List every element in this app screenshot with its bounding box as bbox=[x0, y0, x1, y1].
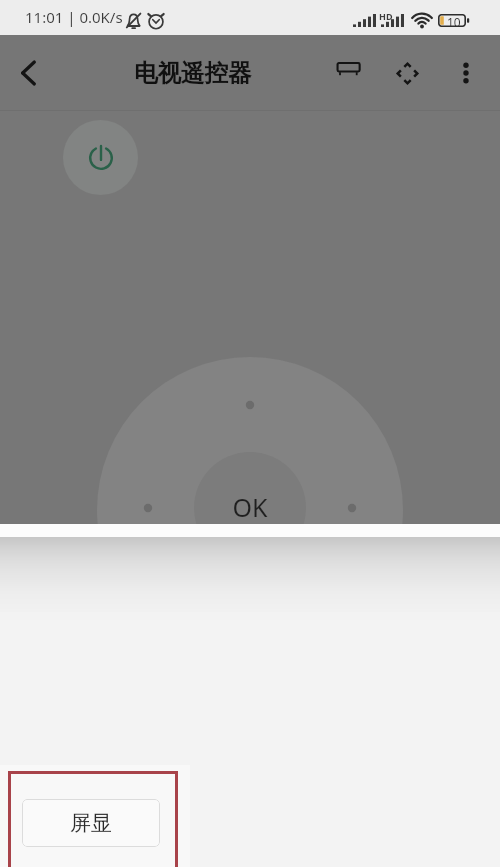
button[interactable]: Screen mirror bbox=[326, 47, 370, 91]
staticText: HD bbox=[379, 10, 393, 22]
button[interactable]: More options bbox=[444, 51, 488, 95]
button[interactable]: Power bbox=[63, 120, 138, 195]
button[interactable]: Back bbox=[6, 51, 50, 95]
staticText: 10 bbox=[447, 14, 461, 27]
staticText: 电视遥控器 bbox=[134, 58, 252, 88]
staticText: OK bbox=[232, 490, 268, 522]
staticText: 屏显 bbox=[70, 810, 112, 836]
staticText: 11:01 | 0.0K/s bbox=[25, 7, 123, 27]
button[interactable]: Move bbox=[385, 51, 429, 95]
button[interactable]: 屏显 bbox=[22, 799, 160, 847]
